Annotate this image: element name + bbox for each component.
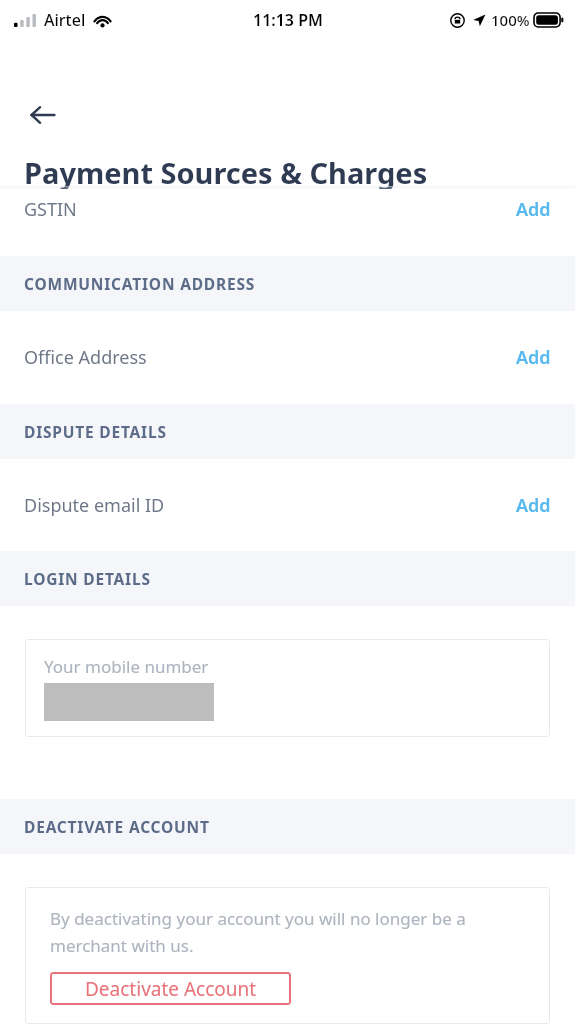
button[interactable]: Your mobile number [25,639,550,737]
button[interactable]: Dispute email ID [0,459,575,551]
button[interactable]: Back [20,92,66,138]
staticText: LOGIN DETAILS [24,568,151,589]
staticText: 100% [491,10,530,30]
button[interactable]: GSTIN [0,189,575,256]
staticText: Add [516,197,551,222]
staticText: By deactivating your account you will no… [50,907,530,957]
staticText: Add [516,493,551,518]
staticText: Add [516,345,551,370]
staticText: Office Address [24,345,147,370]
staticText: Deactivate Account [85,976,257,1002]
staticText: DISPUTE DETAILS [24,421,167,442]
staticText: Your mobile number [44,655,209,678]
staticText: GSTIN [24,197,77,222]
staticText: Payment Sources & Charges [24,153,428,192]
staticText: COMMUNICATION ADDRESS [24,273,256,294]
staticText: 11:13 PM [253,9,323,31]
staticText: Airtel [44,9,86,31]
button[interactable]: Office Address [0,311,575,404]
button[interactable]: Deactivate Account [50,972,291,1005]
staticText: Dispute email ID [24,493,165,518]
staticText: DEACTIVATE ACCOUNT [24,816,210,837]
